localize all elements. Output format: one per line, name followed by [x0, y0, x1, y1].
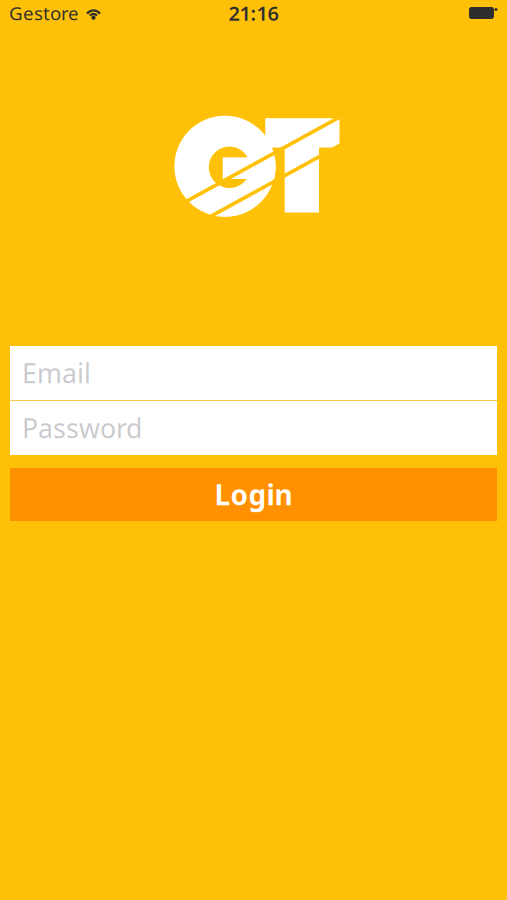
staticText: Email — [22, 355, 91, 391]
button[interactable]: Login — [10, 468, 497, 521]
staticText: Gestore — [9, 1, 79, 25]
button[interactable]: Email — [10, 346, 497, 400]
staticText: Password — [22, 410, 142, 446]
staticText: Login — [214, 476, 292, 513]
button[interactable]: Password — [10, 401, 497, 455]
staticText: 21:16 — [228, 0, 278, 26]
